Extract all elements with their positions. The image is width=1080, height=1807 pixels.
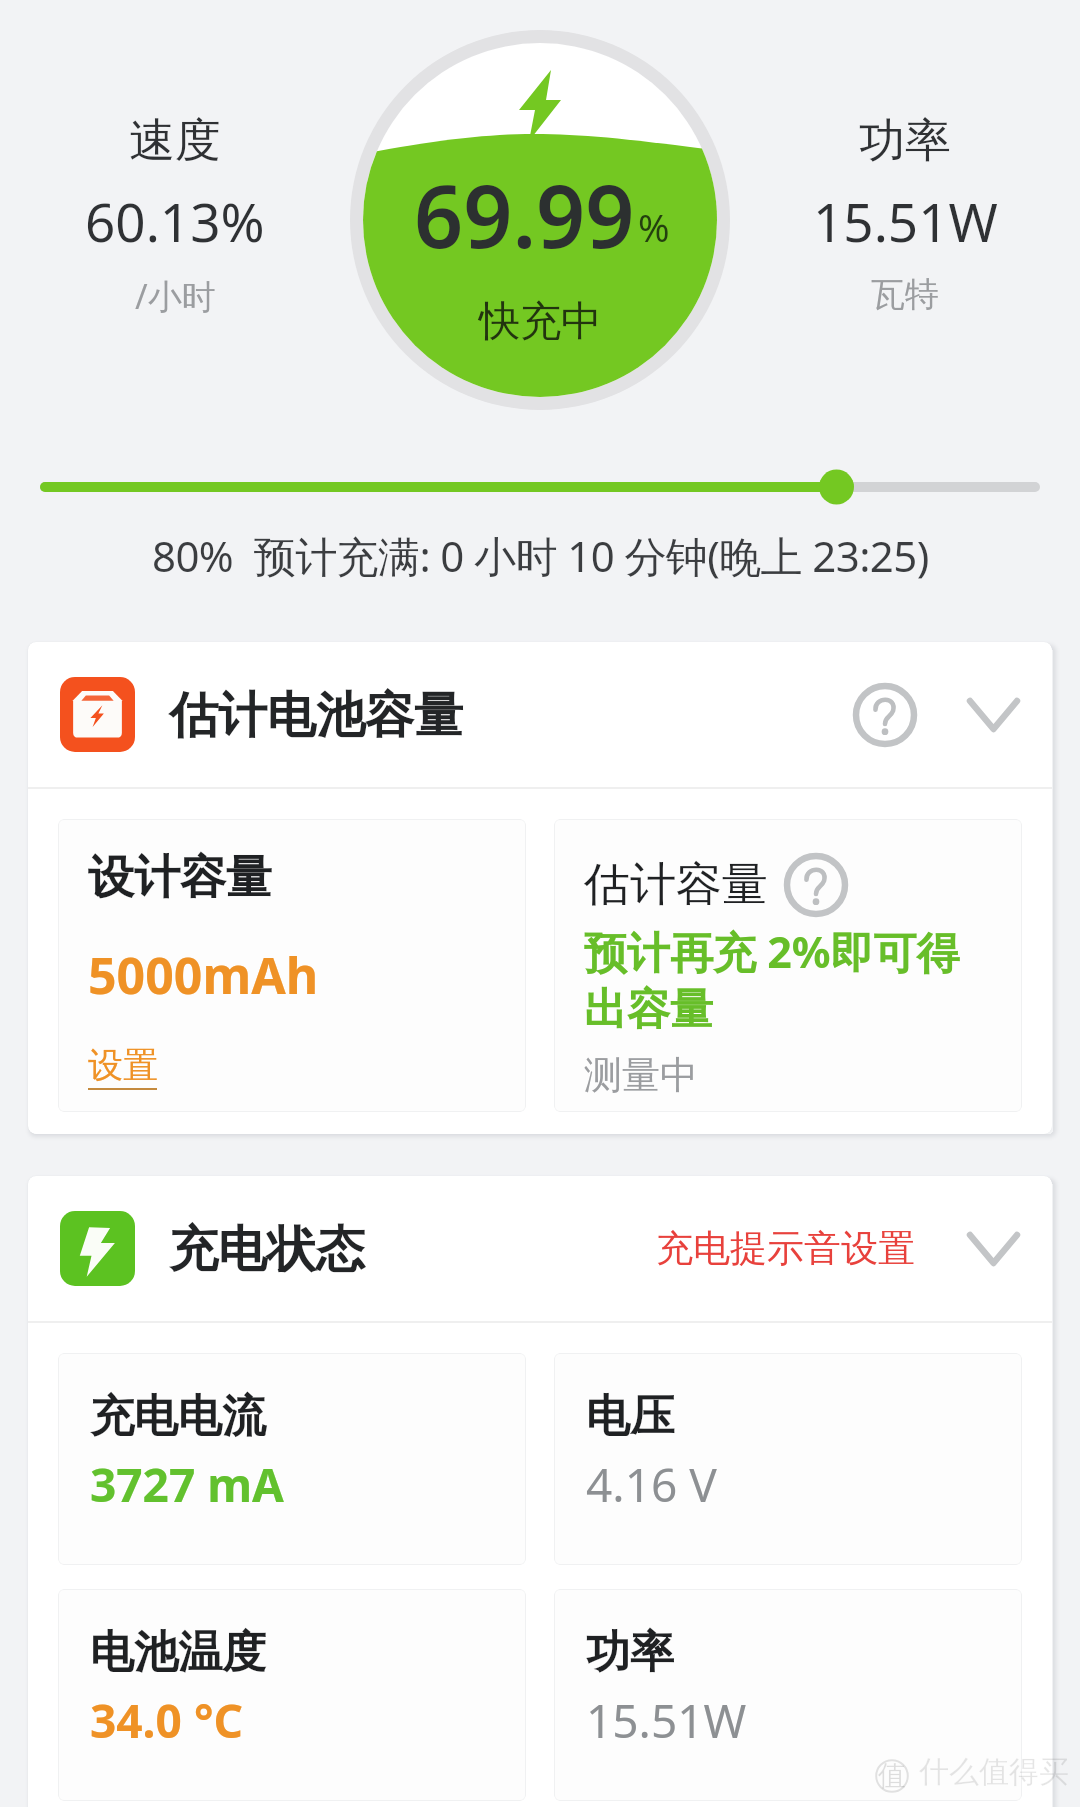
other: Expand xyxy=(965,1229,1022,1269)
staticText: 瓦特 xyxy=(871,273,939,316)
staticText: 34.0 xyxy=(90,1689,194,1752)
other: Help xyxy=(784,853,848,917)
staticText: 预计再充 2%即可得 出容量 xyxy=(584,922,960,1037)
staticText: 电压 xyxy=(586,1389,674,1444)
staticText: 15.51W xyxy=(586,1689,747,1752)
staticText: 60.13% xyxy=(85,185,265,257)
button[interactable]: 设计容量 xyxy=(58,819,526,1112)
button[interactable]: 充电状态 xyxy=(28,1176,1052,1321)
button[interactable]: 电池温度 xyxy=(58,1589,526,1801)
staticText: 80% 预计充满: 0 小时 10 分钟(晚上 23:25) xyxy=(152,527,929,584)
staticText: 设计容量 xyxy=(88,849,272,907)
staticText: 充电电流 xyxy=(90,1389,266,1444)
button[interactable]: 功率 xyxy=(554,1589,1022,1801)
button[interactable]: 估计电池容量 xyxy=(28,642,1052,787)
button[interactable]: 电压 xyxy=(554,1353,1022,1565)
staticText: /小时 xyxy=(135,273,216,319)
staticText: 功率 xyxy=(586,1625,674,1680)
staticText: °C xyxy=(194,1689,244,1752)
staticText: 69.99 xyxy=(414,156,635,273)
button[interactable]: 设置 xyxy=(88,1043,158,1090)
staticText: 充电状态 xyxy=(169,1219,365,1281)
button[interactable]: 估计容量 xyxy=(554,819,1022,1112)
staticText: 估计容量 xyxy=(584,856,768,914)
staticText: 快充中 xyxy=(479,296,602,348)
staticText: 值 xyxy=(878,1758,906,1793)
other: Help xyxy=(853,683,917,747)
staticText: 15.51W xyxy=(813,185,998,257)
staticText: 测量中 xyxy=(584,1051,698,1099)
staticText: 3727 mA xyxy=(90,1453,284,1516)
staticText: 电池温度 xyxy=(90,1625,266,1680)
staticText: 设置 xyxy=(88,1043,158,1087)
button[interactable]: 充电电流 xyxy=(58,1353,526,1565)
staticText: 充电提示音设置 xyxy=(656,1225,915,1272)
other: Expand xyxy=(965,695,1022,735)
staticText: 速度 xyxy=(129,112,221,170)
staticText: 5000mAh xyxy=(88,941,319,1009)
staticText: 功率 xyxy=(859,112,951,170)
staticText: 4.16 V xyxy=(586,1453,717,1516)
staticText: 估计电池容量 xyxy=(169,685,463,747)
button[interactable]: 充电提示音设置 xyxy=(656,1225,915,1272)
staticText: 什么值得买 xyxy=(919,1753,1069,1791)
staticText: % xyxy=(638,201,670,253)
